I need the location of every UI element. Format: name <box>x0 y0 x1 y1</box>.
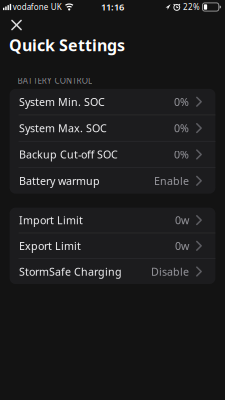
button[interactable]: Export Limit <box>10 233 215 258</box>
button[interactable]: Import Limit <box>10 208 215 233</box>
staticText: Export Limit <box>19 239 81 253</box>
staticText: Disable <box>151 264 189 279</box>
staticText: 0w <box>175 213 189 227</box>
staticText: vodafone UK <box>13 2 62 12</box>
button[interactable]: System Min. SOC <box>10 89 215 114</box>
staticText: StormSafe Charging <box>19 264 122 279</box>
button[interactable]: StormSafe Charging <box>10 259 215 284</box>
staticText: 0% <box>174 121 189 135</box>
staticText: Enable <box>154 174 189 188</box>
button[interactable]: Backup Cut-off SOC <box>10 142 215 167</box>
staticText: Battery warmup <box>19 174 100 188</box>
button[interactable]: Close <box>0 14 26 34</box>
staticText: Quick Settings <box>9 34 125 56</box>
staticText: 22% <box>183 2 200 12</box>
staticText: System Min. SOC <box>19 95 105 109</box>
staticText: Backup Cut-off SOC <box>19 147 118 162</box>
staticText: Import Limit <box>19 213 83 227</box>
staticText: 0w <box>175 239 189 253</box>
staticText: 0% <box>174 95 189 109</box>
staticText: System Max. SOC <box>19 121 107 135</box>
staticText: BATTERY CONTROL <box>17 75 92 86</box>
staticText: 11:16 <box>101 1 124 13</box>
button[interactable]: System Max. SOC <box>10 115 215 141</box>
button[interactable]: Battery warmup <box>10 168 215 194</box>
staticText: 0% <box>174 147 189 162</box>
